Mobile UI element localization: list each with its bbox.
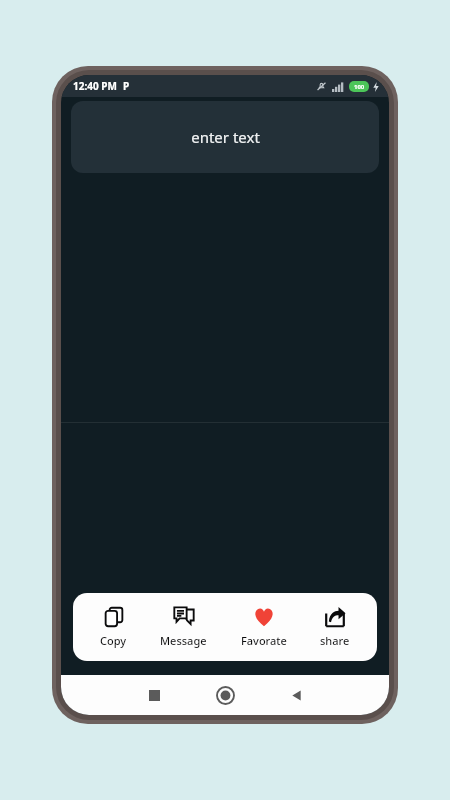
- staticText: 12:40 PM: [73, 79, 117, 93]
- staticText: enter text: [191, 127, 260, 147]
- button[interactable]: Copy: [94, 602, 133, 652]
- staticText: share: [320, 633, 350, 648]
- button[interactable]: share: [314, 602, 356, 652]
- staticText: Favorate: [241, 633, 287, 648]
- staticText: Message: [160, 633, 207, 648]
- button[interactable]: Message: [154, 602, 213, 652]
- button[interactable]: Favorate: [235, 602, 293, 652]
- button[interactable]: Recent apps: [137, 678, 171, 712]
- button[interactable]: Back: [279, 678, 313, 712]
- button[interactable]: enter text: [71, 101, 379, 173]
- staticText: 100: [354, 83, 365, 91]
- staticText: Copy: [100, 633, 127, 648]
- staticText: P: [123, 79, 130, 93]
- button[interactable]: Home: [208, 678, 242, 712]
